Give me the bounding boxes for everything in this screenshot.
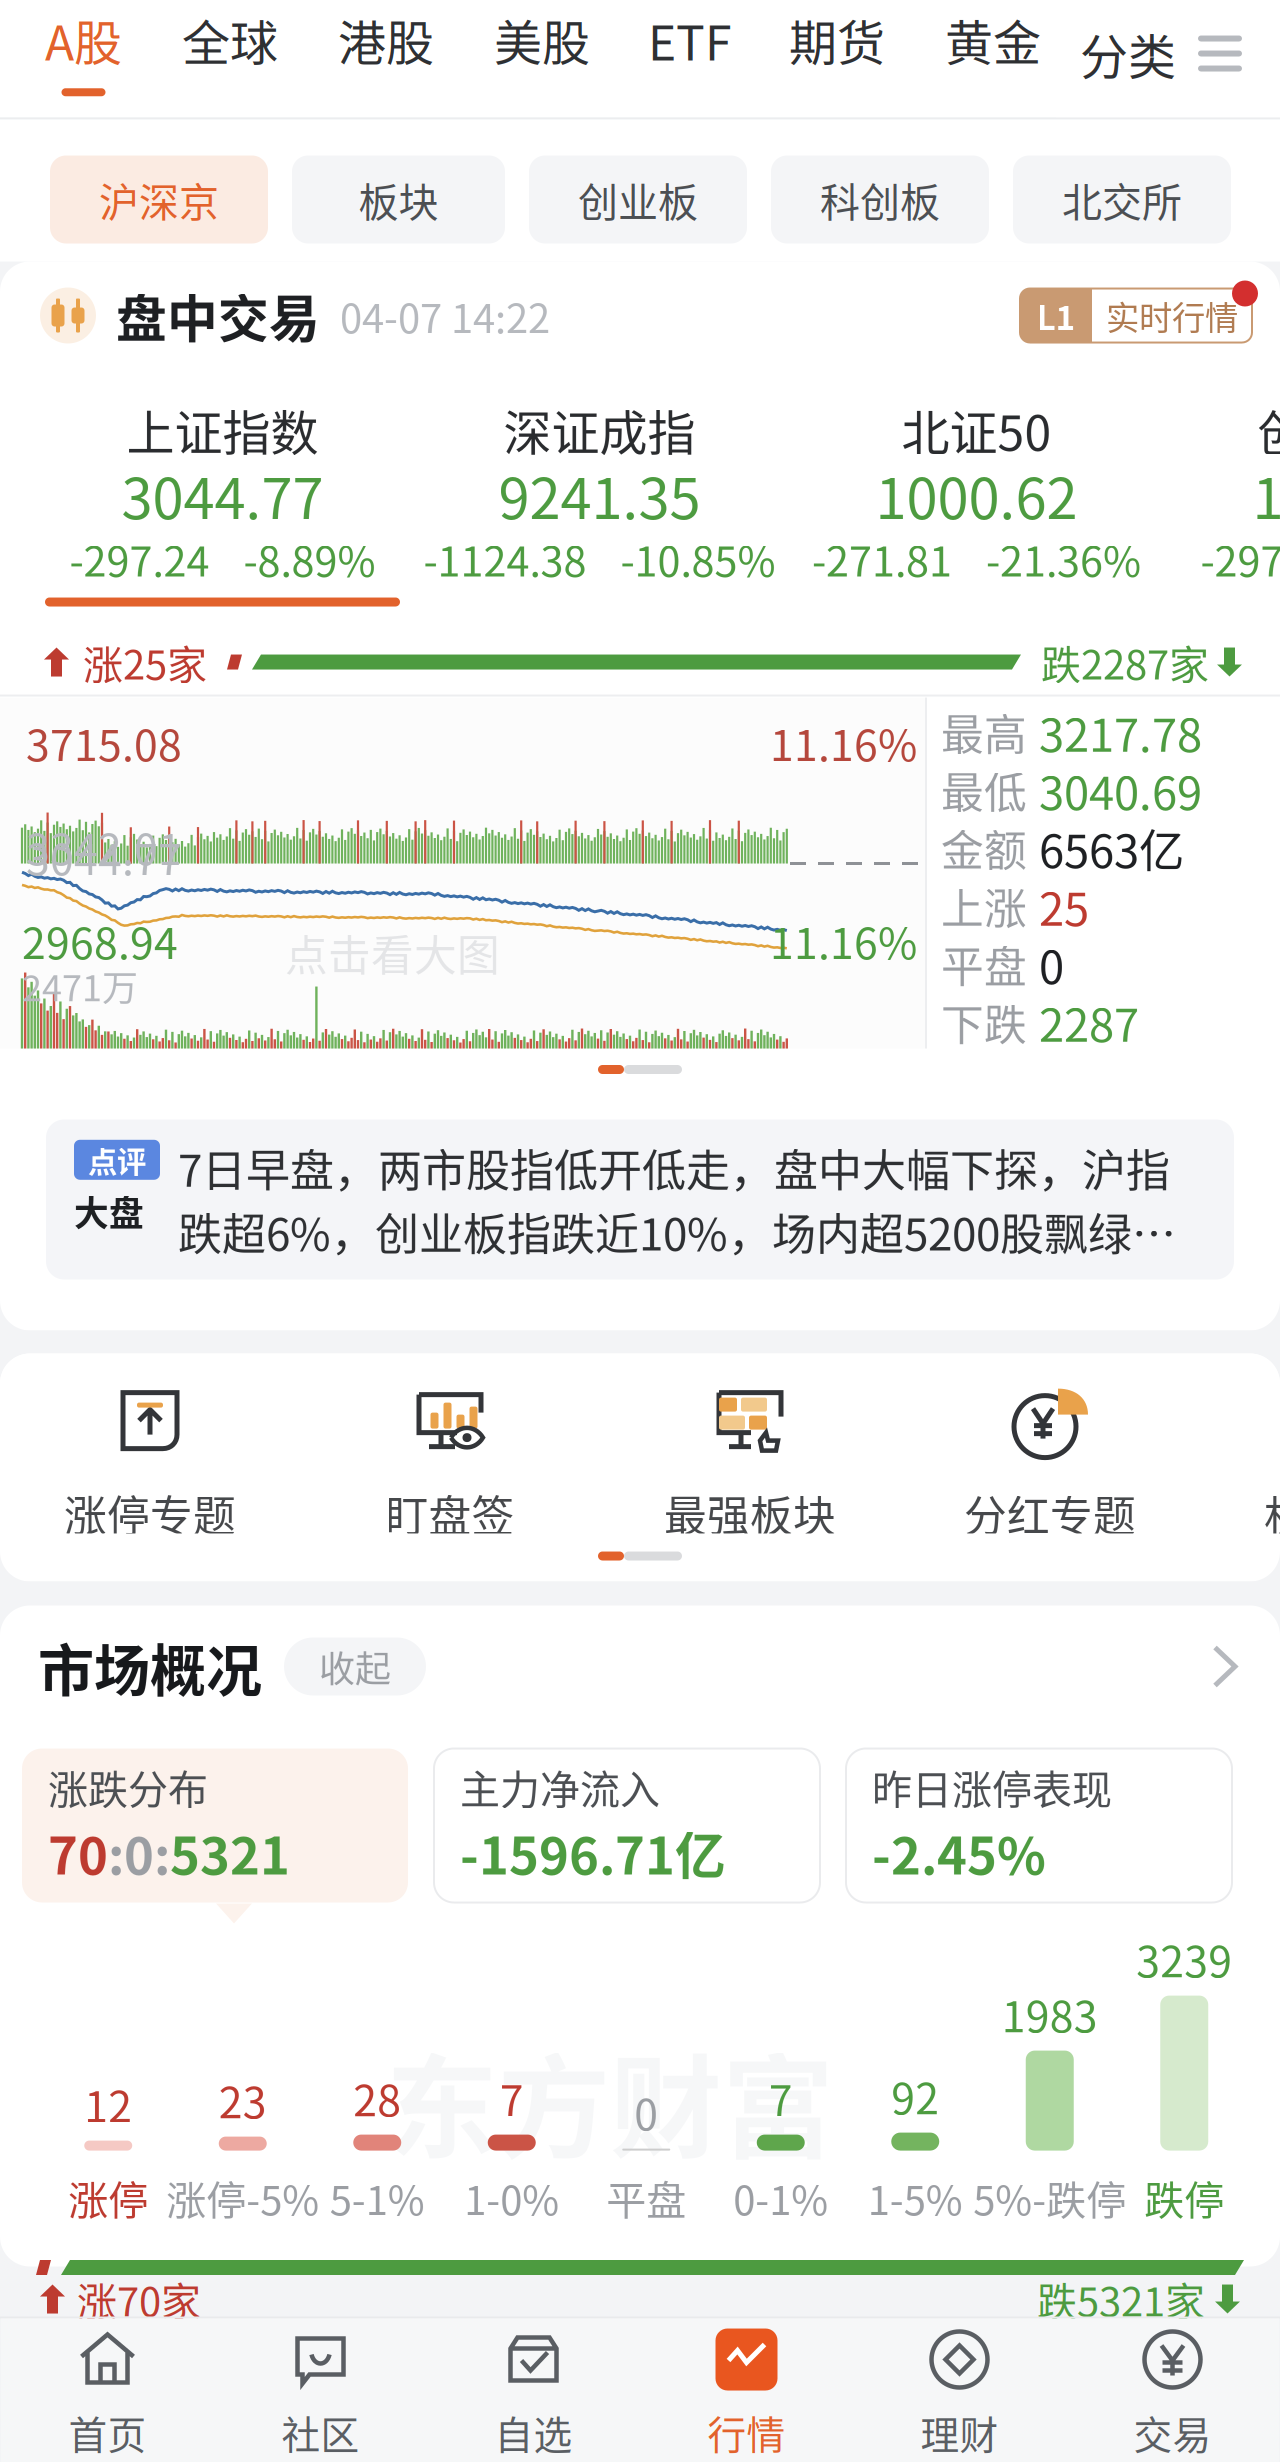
- staticText: 社区: [281, 2404, 359, 2460]
- staticText: 0: [634, 2081, 658, 2143]
- staticText: L1: [1036, 291, 1075, 340]
- staticText: 上涨: [941, 875, 1027, 937]
- button[interactable]: 分类: [1056, 0, 1280, 117]
- staticText: -297.24: [1200, 529, 1280, 588]
- staticText: 平盘: [941, 933, 1027, 995]
- button[interactable]: 美股: [464, 0, 620, 117]
- staticText: 点评: [88, 1139, 146, 1181]
- staticText: 11.16%: [770, 909, 917, 971]
- button[interactable]: 更多: [1194, 1637, 1256, 1695]
- staticText: 平盘: [606, 2169, 686, 2226]
- button[interactable]: 北证50: [788, 369, 1165, 629]
- staticText: 3715.08: [26, 711, 182, 773]
- staticText: 3040.69: [1039, 757, 1202, 823]
- button[interactable]: ETF: [620, 0, 759, 117]
- staticText: 2471万: [22, 959, 138, 1012]
- staticText: 理财: [920, 2404, 998, 2460]
- staticText: 92: [891, 2065, 939, 2127]
- button[interactable]: 黄金: [915, 0, 1071, 117]
- button[interactable]: 期货: [759, 0, 915, 117]
- staticText: 港股: [338, 5, 434, 74]
- staticText: 行情: [707, 2404, 785, 2460]
- staticText: 最强板块: [664, 1483, 836, 1544]
- button[interactable]: 理财: [853, 2318, 1066, 2462]
- staticText: 最低: [941, 759, 1027, 821]
- staticText: 2968.94: [22, 909, 178, 971]
- button[interactable]: 自选: [427, 2318, 640, 2462]
- button[interactable]: 盯盘签: [300, 1393, 600, 1533]
- staticText: 科创板: [820, 170, 940, 228]
- button[interactable]: 涨跌分布: [22, 1748, 408, 1902]
- staticText: 0: [1039, 931, 1064, 997]
- staticText: 实时行情: [1106, 291, 1238, 340]
- staticText: 1983: [1002, 1983, 1098, 2045]
- button[interactable]: 主力净流入: [434, 1748, 820, 1902]
- button[interactable]: 北交所: [1013, 155, 1231, 243]
- staticText: 0: [124, 1816, 154, 1889]
- staticText: -271.81: [812, 529, 952, 588]
- button[interactable]: 机构调研: [1200, 1393, 1280, 1533]
- button[interactable]: 创业板: [529, 155, 747, 243]
- staticText: :: [154, 1816, 170, 1889]
- button[interactable]: 创业板指: [1165, 369, 1280, 629]
- staticText: 沪深京: [99, 170, 219, 228]
- staticText: 主力净流入: [460, 1758, 660, 1816]
- staticText: 涨停-5%: [166, 2169, 319, 2226]
- staticText: 收起: [319, 1640, 391, 1692]
- button[interactable]: 港股: [308, 0, 464, 117]
- staticText: 1-0%: [464, 2169, 559, 2226]
- staticText: 7: [769, 2067, 793, 2129]
- staticText: 7: [500, 2067, 524, 2129]
- staticText: 市场概况: [38, 1626, 262, 1707]
- staticText: 最高: [941, 701, 1027, 763]
- button[interactable]: 科创板: [771, 155, 989, 243]
- button[interactable]: 上证指数: [34, 369, 411, 629]
- staticText: 机构调研: [1264, 1483, 1280, 1544]
- staticText: 盯盘签: [385, 1483, 514, 1544]
- staticText: 跌2287家: [1041, 633, 1209, 691]
- button[interactable]: 昨日涨停表现: [846, 1748, 1232, 1902]
- staticText: 11.16%: [770, 711, 917, 773]
- staticText: 昨日涨停表现: [872, 1758, 1112, 1816]
- staticText: :: [108, 1816, 124, 1889]
- staticText: 分红专题: [964, 1483, 1136, 1544]
- button[interactable]: 涨停专题: [0, 1393, 300, 1533]
- button[interactable]: 点评: [0, 1089, 1280, 1279]
- button[interactable]: 深证成指: [411, 369, 788, 629]
- button[interactable]: A股: [15, 0, 152, 117]
- button[interactable]: 行情: [640, 2318, 853, 2462]
- staticText: 28: [353, 2067, 401, 2129]
- staticText: 首页: [68, 2404, 146, 2460]
- staticText: 东方财富: [386, 2020, 834, 2182]
- staticText: 9241.35: [498, 454, 700, 535]
- staticText: 黄金: [945, 5, 1041, 74]
- button[interactable]: 分红专题: [900, 1393, 1200, 1533]
- staticText: 70: [48, 1816, 108, 1889]
- staticText: 点击看大图: [285, 921, 500, 983]
- button[interactable]: 收起: [284, 1637, 426, 1695]
- staticText: 7日早盘，两市股指低开低走，盘中大幅下探，沪指跌超6%，创业板指跌近10%，场内…: [178, 1136, 1194, 1263]
- staticText: 3044.77: [26, 825, 182, 887]
- staticText: 5321: [170, 1816, 290, 1889]
- staticText: 全球: [182, 5, 278, 74]
- button[interactable]: 沪深京: [50, 155, 268, 243]
- staticText: 深证成指: [503, 395, 695, 464]
- staticText: 5%-跌停: [973, 2169, 1126, 2226]
- button[interactable]: 交易: [1066, 2318, 1279, 2462]
- staticText: 涨停专题: [64, 1483, 236, 1544]
- button[interactable]: 全球: [152, 0, 308, 117]
- staticText: -1596.71亿: [460, 1816, 726, 1889]
- button[interactable]: 首页: [1, 2318, 214, 2462]
- staticText: -8.89%: [243, 529, 375, 588]
- button[interactable]: 社区: [214, 2318, 427, 2462]
- staticText: 板块: [358, 170, 438, 228]
- staticText: 大盘: [74, 1186, 144, 1236]
- button[interactable]: 板块: [292, 155, 505, 243]
- staticText: ETF: [648, 5, 731, 74]
- staticText: 2287: [1039, 989, 1139, 1055]
- staticText: -297.24: [69, 529, 209, 588]
- staticText: 5-1%: [330, 2169, 425, 2226]
- staticText: 3342.01: [26, 815, 182, 877]
- staticText: 分类: [1080, 19, 1176, 88]
- button[interactable]: 最强板块: [600, 1393, 900, 1533]
